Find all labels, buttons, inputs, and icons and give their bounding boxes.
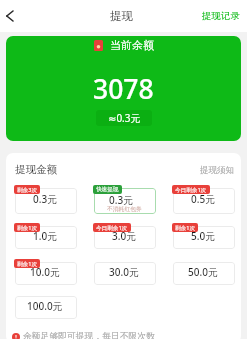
button[interactable]: 提现须知 [191, 157, 241, 183]
staticText: 1.0元 [33, 229, 58, 243]
staticText: 5.0元 [191, 229, 216, 243]
button[interactable]: 10.0元 [15, 262, 77, 285]
staticText: 30.0元 [109, 265, 139, 279]
button[interactable]: 提现记录 [192, 2, 247, 31]
staticText: 50.0元 [188, 265, 218, 279]
staticText: 提现须知 [200, 165, 234, 176]
staticText: 100.0元 [27, 299, 63, 313]
button[interactable]: 30.0元 [94, 262, 156, 285]
staticText: 3.0元 [112, 229, 137, 243]
staticText: 3078 [93, 71, 154, 107]
button[interactable]: 100.0元 [15, 296, 77, 319]
button[interactable]: 50.0元 [173, 262, 235, 285]
staticText: 提现记录 [202, 10, 240, 22]
staticText: 今日剩余1次 [96, 224, 128, 232]
staticText: 不消耗红包券 [107, 205, 142, 212]
staticText: 当前余额 [110, 38, 154, 52]
staticText: ≈0.3元 [108, 111, 141, 125]
button[interactable]: Back [0, 0, 18, 32]
button[interactable]: 1.0元 [15, 226, 77, 249]
staticText: 剩余3次 [17, 186, 37, 194]
staticText: 0.3元 [109, 193, 134, 207]
staticText: 今日剩余1次 [175, 186, 207, 194]
staticText: 快速提现 [96, 186, 119, 193]
staticText: 提现 [110, 9, 133, 23]
button[interactable]: 0.5元 [173, 188, 235, 214]
staticText: 0.3元 [33, 192, 58, 206]
staticText: 剩余1次 [175, 224, 195, 232]
staticText: 10.0元 [30, 265, 60, 279]
staticText: 剩余1次 [17, 224, 37, 232]
button[interactable]: 0.3元 [94, 188, 156, 214]
staticText: 提现金额 [15, 163, 57, 176]
button[interactable]: 3.0元 [94, 226, 156, 249]
button[interactable]: 5.0元 [173, 226, 235, 249]
button[interactable]: 0.3元 [15, 188, 77, 214]
staticText: 余额足够即可提现，每日不限次数 [23, 331, 155, 339]
staticText: 0.5元 [191, 192, 216, 206]
staticText: 剩余1次 [17, 260, 37, 268]
